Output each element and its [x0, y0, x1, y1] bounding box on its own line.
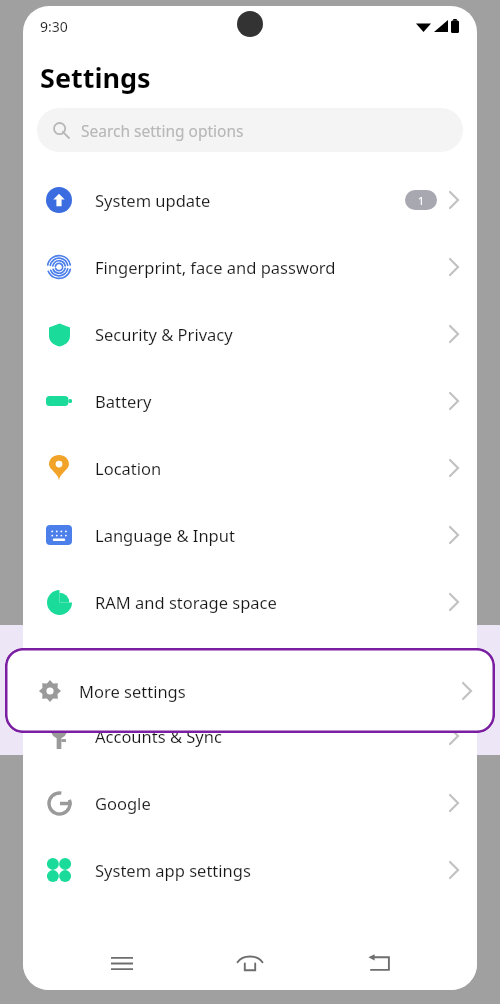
staticText: Settings [40, 59, 151, 96]
button[interactable]: RAM and storage space [23, 568, 477, 635]
staticText: Language & Input [95, 524, 449, 546]
staticText: System update [95, 189, 405, 211]
button[interactable]: Recents [92, 936, 152, 990]
staticText: Location [95, 457, 449, 479]
button[interactable]: Back [349, 936, 409, 990]
button[interactable]: More settings [23, 635, 477, 702]
button[interactable]: Fingerprint, face and password [23, 233, 477, 300]
button[interactable]: Location [23, 434, 477, 501]
staticText: More settings [79, 680, 462, 702]
button[interactable]: More settings [5, 648, 495, 733]
button[interactable]: Language & Input [23, 501, 477, 568]
staticText: Accounts & Sync [95, 725, 449, 747]
staticText: Security & Privacy [95, 323, 449, 345]
button[interactable]: Accounts & Sync [23, 702, 477, 769]
staticText: 9:30 [40, 17, 68, 36]
staticText: Google [95, 792, 449, 814]
button[interactable]: System update [23, 166, 477, 233]
staticText: Battery [95, 390, 449, 412]
staticText: System app settings [95, 859, 449, 881]
staticText: Search setting options [81, 120, 244, 141]
staticText: Fingerprint, face and password [95, 256, 449, 278]
button[interactable]: Security & Privacy [23, 300, 477, 367]
button[interactable]: Home [220, 936, 280, 990]
button[interactable]: System app settings [23, 836, 477, 903]
button[interactable]: Google [23, 769, 477, 836]
button[interactable]: Search setting options [37, 108, 463, 152]
staticText: 1 [418, 193, 425, 208]
staticText: RAM and storage space [95, 591, 449, 613]
button[interactable]: Battery [23, 367, 477, 434]
